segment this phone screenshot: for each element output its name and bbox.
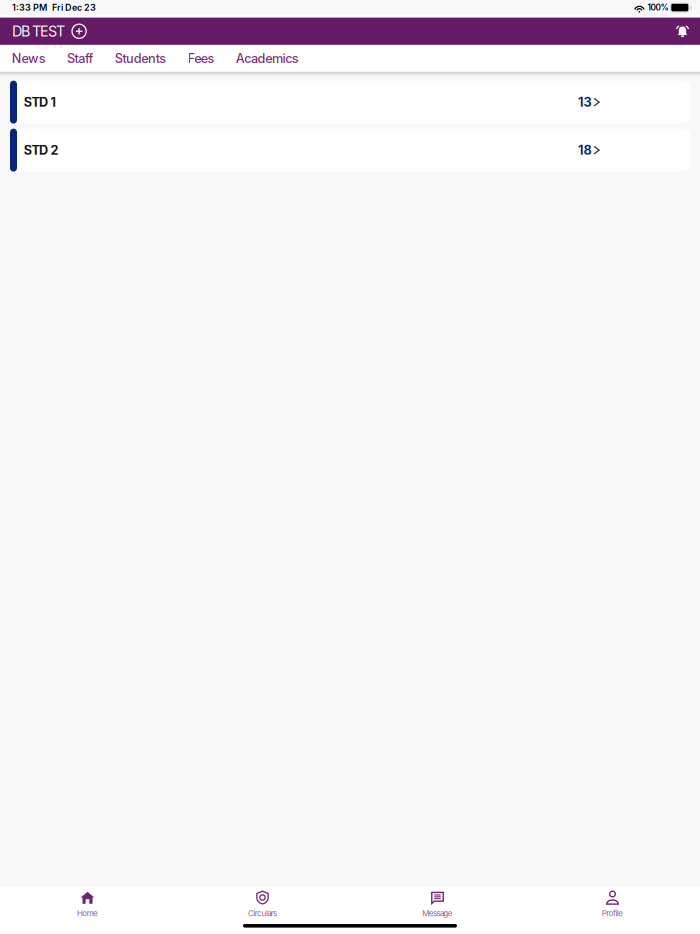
button[interactable]: Profile [525,886,700,924]
button[interactable]: Message [350,886,525,924]
staticText: STD 2 [24,142,58,158]
staticText: 18 [578,142,591,158]
button[interactable]: STD 1 [10,81,690,124]
staticText: News [12,51,46,66]
staticText: Fees [187,51,214,66]
staticText: Staff [67,51,94,66]
staticText: Fri Dec 23 [52,2,96,13]
staticText: STD 1 [24,94,55,110]
staticText: Academics [236,51,299,66]
staticText: 1:33 PM [12,2,47,13]
staticText: DB TEST [12,22,65,40]
staticText: Circulars [248,909,277,918]
staticText: Students [115,51,166,66]
staticText: Message [422,909,453,918]
button[interactable]: Circulars [175,886,350,924]
button[interactable]: Add [69,21,89,41]
button[interactable]: STD 2 [10,129,690,172]
button[interactable]: Staff [56,45,104,72]
staticText: Home [77,909,98,918]
button[interactable]: Students [104,45,177,72]
button[interactable]: DB TEST [12,18,65,44]
button[interactable]: Notifications [672,21,692,41]
button[interactable]: Fees [177,45,225,72]
staticText: Profile [602,909,623,918]
button[interactable]: Home [0,886,175,924]
staticText: 13 [578,94,591,110]
button[interactable]: News [1,45,56,72]
button[interactable]: Academics [225,45,309,72]
staticText: 100% [647,2,668,12]
